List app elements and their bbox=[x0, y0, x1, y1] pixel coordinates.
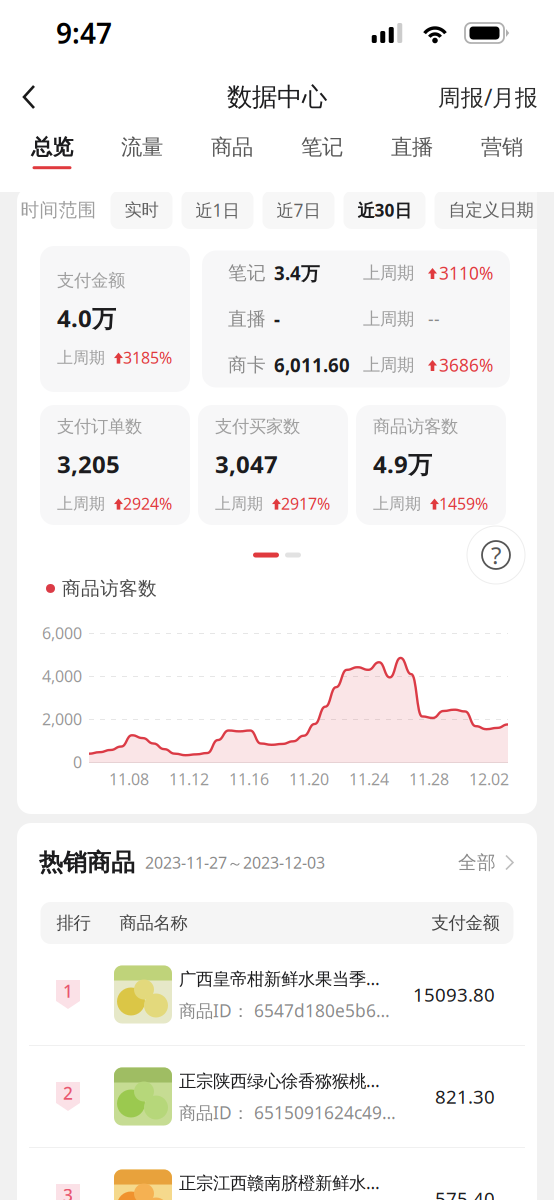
staticText: 营销 bbox=[481, 134, 523, 160]
staticText: 6,000 bbox=[42, 622, 82, 644]
staticText: 15093.80 bbox=[413, 982, 495, 1007]
staticText: 直播 bbox=[228, 307, 266, 330]
staticText: 上周期 bbox=[57, 494, 105, 513]
staticText: 时间范围 bbox=[20, 198, 96, 221]
staticText: 热销商品 bbox=[39, 848, 135, 877]
staticText: 数据中心 bbox=[227, 81, 327, 112]
staticText: 2924% bbox=[123, 493, 172, 514]
staticText: 商卡 bbox=[228, 353, 266, 376]
staticText: 直播 bbox=[391, 134, 433, 160]
staticText: 11.20 bbox=[289, 768, 329, 790]
staticText: - bbox=[274, 307, 280, 331]
staticText: 支付买家数 bbox=[215, 416, 300, 437]
staticText: 3185% bbox=[123, 347, 172, 368]
staticText: 上周期 bbox=[57, 348, 105, 367]
staticText: 6,011.60 bbox=[274, 353, 350, 377]
staticText: 1 bbox=[63, 979, 73, 1002]
staticText: 自定义日期 bbox=[448, 199, 533, 221]
staticText: 3686% bbox=[439, 353, 493, 376]
staticText: 4,000 bbox=[42, 665, 82, 687]
staticText: 上周期 bbox=[373, 494, 421, 513]
staticText: 2023-11-27～2023-12-03 bbox=[145, 852, 325, 873]
staticText: 商品ID： 6547d180e5b6… bbox=[179, 999, 390, 1022]
staticText: 0 bbox=[73, 751, 82, 773]
button[interactable]: 热销商品 bbox=[17, 823, 537, 902]
staticText: 上周期 bbox=[363, 354, 414, 376]
staticText: 上周期 bbox=[215, 494, 263, 513]
staticText: 支付金额 bbox=[57, 270, 125, 291]
staticText: 支付订单数 bbox=[57, 416, 142, 437]
button[interactable]: 自定义日期 bbox=[434, 191, 554, 229]
staticText: 上周期 bbox=[363, 262, 414, 284]
staticText: 2917% bbox=[281, 493, 330, 514]
button[interactable]: 近30日 bbox=[343, 191, 434, 229]
staticText: 9:47 bbox=[56, 14, 112, 52]
staticText: 3,047 bbox=[215, 448, 278, 480]
staticText: 流量 bbox=[121, 134, 163, 160]
staticText: 4.0万 bbox=[57, 302, 116, 334]
staticText: 3.4万 bbox=[274, 261, 320, 285]
staticText: 近1日 bbox=[195, 198, 239, 221]
button[interactable]: 总览 bbox=[7, 128, 97, 186]
button[interactable]: 流量 bbox=[97, 128, 187, 186]
button[interactable]: 商品 bbox=[187, 128, 277, 186]
staticText: 11.28 bbox=[409, 768, 449, 790]
staticText: 笔记 bbox=[228, 261, 266, 284]
staticText: 3,205 bbox=[57, 448, 120, 480]
staticText: 12.02 bbox=[469, 768, 509, 790]
button[interactable]: 实时 bbox=[110, 191, 181, 229]
staticText: 1459% bbox=[439, 493, 488, 514]
staticText: 广西皇帝柑新鲜水果当季… bbox=[179, 967, 380, 990]
staticText: 支付金额 bbox=[431, 912, 499, 934]
staticText: 全部 bbox=[458, 851, 496, 874]
staticText: 575.40 bbox=[435, 1186, 495, 1200]
staticText: 实时 bbox=[124, 199, 158, 221]
button[interactable]: 帮助 bbox=[467, 526, 525, 584]
staticText: 821.30 bbox=[435, 1084, 495, 1109]
button[interactable]: 3 bbox=[17, 1148, 537, 1200]
staticText: 商品ID： 6515091624c49… bbox=[179, 1101, 396, 1124]
staticText: 4.9万 bbox=[373, 448, 432, 480]
button[interactable]: 营销 bbox=[457, 128, 547, 186]
staticText: 上周期 bbox=[363, 308, 414, 330]
staticText: 近30日 bbox=[357, 198, 411, 221]
staticText: 正宗陕西绿心徐香猕猴桃… bbox=[179, 1069, 380, 1092]
staticText: 11.16 bbox=[229, 768, 269, 790]
staticText: 近7日 bbox=[276, 198, 320, 221]
staticText: 3110% bbox=[439, 261, 493, 284]
staticText: 正宗江西赣南脐橙新鲜水… bbox=[179, 1171, 380, 1194]
staticText: 2 bbox=[63, 1081, 73, 1104]
button[interactable]: 直播 bbox=[367, 128, 457, 186]
button[interactable]: 1 bbox=[17, 944, 537, 1045]
button[interactable]: 近1日 bbox=[181, 191, 262, 229]
staticText: 总览 bbox=[31, 134, 73, 160]
staticText: 11.24 bbox=[349, 768, 389, 790]
staticText: 周报/月报 bbox=[438, 82, 538, 112]
staticText: -- bbox=[428, 307, 440, 330]
staticText: 商品访客数 bbox=[373, 416, 458, 437]
staticText: 2,000 bbox=[42, 708, 82, 730]
staticText: 3 bbox=[63, 1183, 73, 1200]
staticText: ? bbox=[491, 539, 501, 571]
staticText: 商品 bbox=[211, 134, 253, 160]
button[interactable]: 返回 bbox=[0, 66, 59, 128]
staticText: 11.12 bbox=[169, 768, 209, 790]
staticText: 商品名称 bbox=[119, 912, 187, 934]
staticText: 排行 bbox=[56, 912, 90, 934]
button[interactable]: 近7日 bbox=[262, 191, 343, 229]
button[interactable]: 2 bbox=[17, 1046, 537, 1147]
button[interactable]: 笔记 bbox=[277, 128, 367, 186]
staticText: 笔记 bbox=[301, 134, 343, 160]
staticText: 11.08 bbox=[109, 768, 149, 790]
button[interactable]: 周报/月报 bbox=[424, 66, 554, 128]
staticText: 商品访客数 bbox=[62, 577, 157, 600]
